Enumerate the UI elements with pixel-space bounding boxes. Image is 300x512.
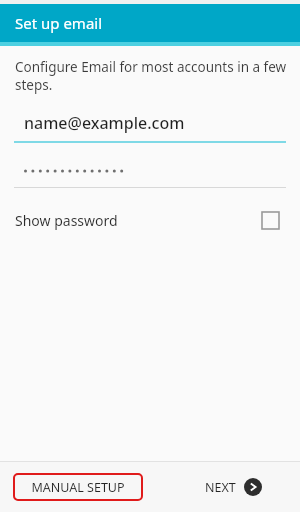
- button[interactable]: name@example.com: [0, 112, 300, 143]
- button[interactable]: NEXT: [205, 478, 262, 496]
- staticText: Set up email: [15, 13, 103, 33]
- staticText: name@example.com: [24, 112, 185, 134]
- staticText: MANUAL SETUP: [31, 479, 125, 496]
- staticText: NEXT: [205, 479, 236, 496]
- button[interactable]: MANUAL SETUP: [13, 473, 143, 501]
- staticText: Show password: [15, 211, 118, 230]
- other: Next: [244, 478, 262, 496]
- button[interactable]: [0, 165, 300, 188]
- button[interactable]: Show password: [0, 202, 300, 238]
- staticText: Configure Email for most accounts in a f…: [15, 58, 288, 94]
